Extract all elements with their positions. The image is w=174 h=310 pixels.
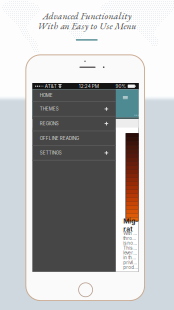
staticText: is now the l [123,240,139,246]
button[interactable]: REGIONS [32,117,116,131]
staticText: REGIONS [40,121,59,126]
staticText: SETTINGS [40,150,62,156]
staticText: THEMES [40,106,59,112]
button[interactable]: OFFLINE READING [32,131,116,146]
staticText: through the [123,236,139,241]
staticText: This analysi [123,245,139,251]
staticText: in the past [123,255,139,260]
staticText: 12:24 PM [79,83,99,89]
staticText: HOME [40,93,53,98]
staticText: With an Easy to Use Menu [37,20,136,32]
staticText: privileging [123,260,139,265]
staticText: AF [134,110,139,117]
staticText: leverage a [123,250,139,255]
staticText: OFFLINE READING [40,135,79,141]
staticText: AT&T [45,83,57,89]
button[interactable]: THEMES [32,102,116,117]
staticText: With curren [123,231,139,236]
staticText: Advanced Functionality [42,9,131,22]
staticText: 90% [115,83,126,89]
button[interactable]: HOME [32,89,116,102]
staticText: produces a [123,265,139,270]
staticText: Migrat [123,217,138,233]
button[interactable]: SETTINGS [32,146,116,161]
